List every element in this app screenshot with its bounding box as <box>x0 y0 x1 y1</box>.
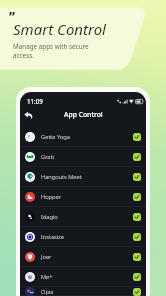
staticText: Getta Yoga <box>41 133 70 141</box>
staticText: 11:09 <box>27 97 43 105</box>
button[interactable]: Back <box>21 108 35 122</box>
button[interactable]: Getta Yoga <box>20 127 146 147</box>
button[interactable]: Instasize <box>20 227 146 247</box>
button[interactable]: Grab <box>20 147 146 167</box>
button[interactable]: Hangouts Meet <box>20 167 146 187</box>
staticText: Grab <box>41 153 54 161</box>
staticText: ” <box>9 8 15 24</box>
staticText: Me+ <box>41 273 53 281</box>
staticText: Hopper <box>41 193 62 201</box>
staticText: Manage apps with secure access. <box>13 42 89 60</box>
staticText: Instasize <box>41 233 64 241</box>
button[interactable]: Opia <box>20 287 146 296</box>
button[interactable]: Idagio <box>20 207 146 227</box>
staticText: Hangouts Meet <box>41 173 82 181</box>
staticText: App Control <box>64 110 103 119</box>
button[interactable]: Joer <box>20 247 146 267</box>
staticText: Smart Control <box>13 19 106 39</box>
staticText: Joer <box>41 253 52 261</box>
staticText: Idagio <box>41 213 58 221</box>
staticText: Opia <box>41 288 54 296</box>
button[interactable]: Me+ <box>20 267 146 287</box>
button[interactable]: Hopper <box>20 187 146 207</box>
